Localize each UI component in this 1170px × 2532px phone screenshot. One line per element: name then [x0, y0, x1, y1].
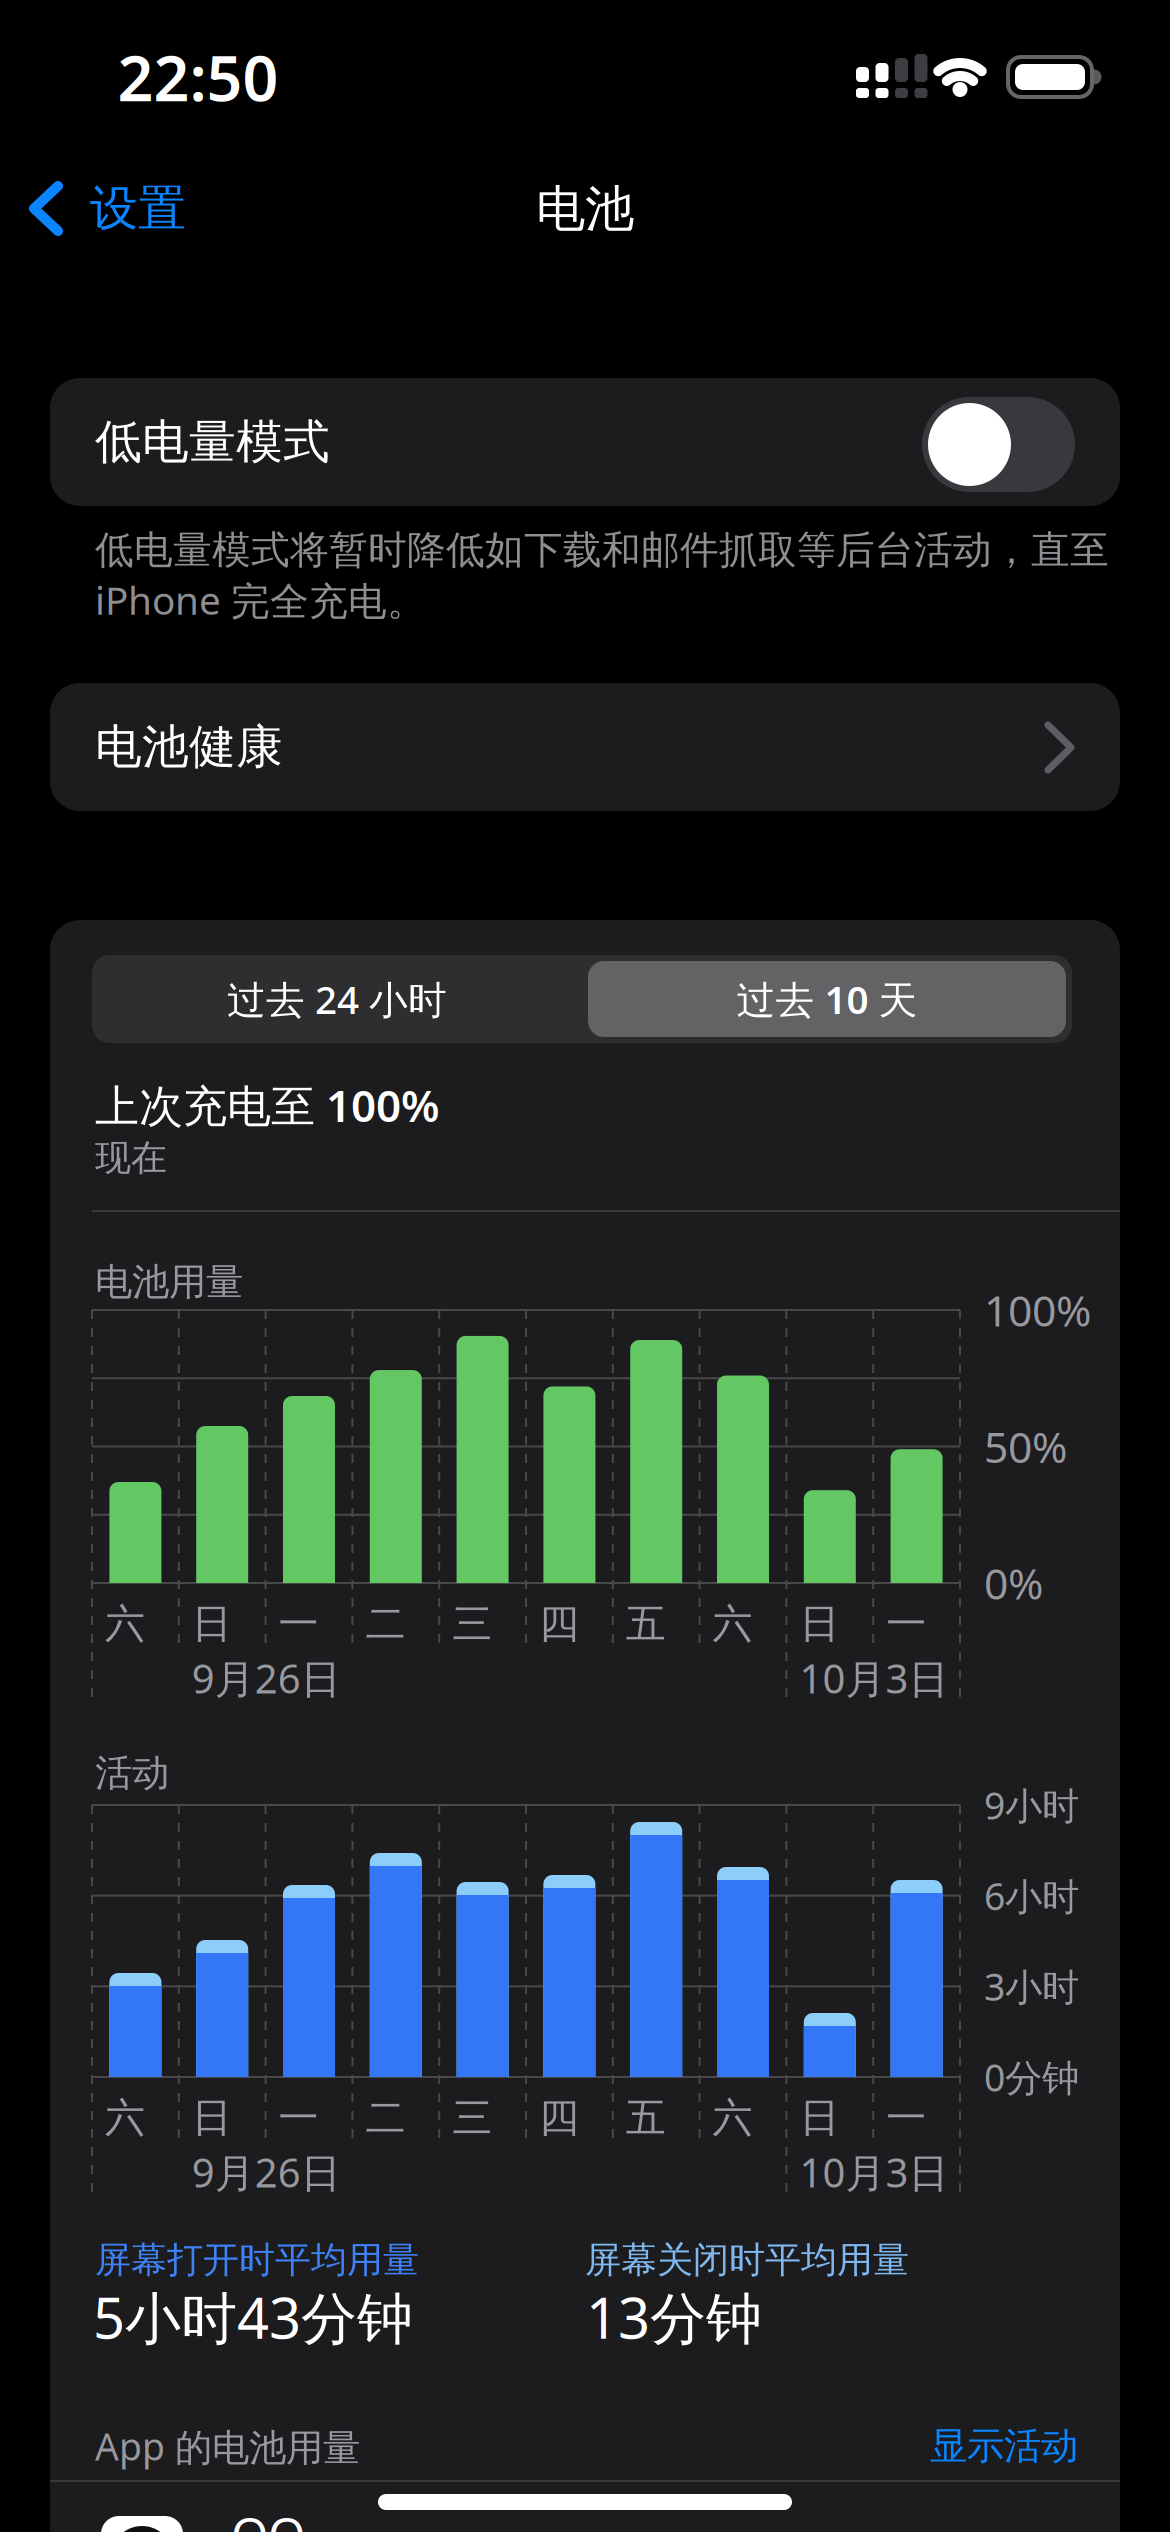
staticText: 四 [539, 1599, 579, 1648]
staticText: 一 [279, 2093, 319, 2142]
staticText: 二 [365, 1599, 405, 1648]
button[interactable]: 低电量模式 [922, 397, 1075, 492]
staticText: 0分钟 [984, 2052, 1079, 2102]
staticText: 过去 10 天 [736, 973, 917, 1025]
staticText: 13分钟 [586, 2280, 762, 2354]
staticText: 六 [713, 2093, 753, 2142]
staticText: 100% [984, 1282, 1091, 1338]
staticText: 电池健康 [95, 718, 283, 776]
staticText: 10月3日 [799, 2145, 948, 2198]
button[interactable]: 返回设置 [29, 178, 270, 239]
staticText: 10月3日 [799, 1651, 948, 1704]
button[interactable]: 电池健康 [50, 683, 1120, 811]
staticText: 屏幕打开时平均用量 [95, 2238, 419, 2282]
staticText: 现在 [95, 1136, 167, 1180]
staticText: QQ [231, 2502, 305, 2532]
staticText: 上次充电至 100% [95, 1076, 440, 1134]
staticText: 设置 [90, 179, 186, 238]
staticText: 日 [192, 2093, 232, 2142]
staticText: 低电量模式 [95, 413, 330, 471]
staticText: 五 [626, 2093, 666, 2142]
staticText: 日 [799, 1599, 839, 1648]
button[interactable]: 过去 10 天 [588, 961, 1066, 1037]
staticText: 六 [713, 1599, 753, 1648]
staticText: 0% [984, 1555, 1043, 1611]
staticText: 50% [984, 1418, 1067, 1475]
staticText: 电池 [536, 179, 634, 239]
staticText: 9月26日 [192, 2145, 341, 2198]
staticText: 日 [799, 2093, 839, 2142]
staticText: 屏幕关闭时平均用量 [585, 2238, 909, 2282]
staticText: 低电量模式将暂时降低如下载和邮件抓取等后台活动，直至 iPhone 完全充电。 [95, 526, 1109, 625]
staticText: 六 [105, 2093, 145, 2142]
staticText: App 的电池用量 [95, 2421, 360, 2471]
staticText: 过去 24 小时 [227, 973, 447, 1025]
staticText: 三 [452, 1599, 492, 1648]
staticText: 显示活动 [930, 2423, 1078, 2469]
staticText: 9月26日 [192, 1651, 341, 1704]
staticText: 四 [539, 2093, 579, 2142]
staticText: 一 [279, 1599, 319, 1648]
button[interactable]: 过去 24 小时 [92, 955, 582, 1043]
staticText: 日 [192, 1599, 232, 1648]
staticText: 六 [105, 1599, 145, 1648]
staticText: 二 [365, 2093, 405, 2142]
staticText: 活动 [95, 1750, 169, 1796]
staticText: 一 [886, 1599, 926, 1648]
staticText: 3小时 [984, 1961, 1079, 2011]
staticText: 一 [886, 2093, 926, 2142]
button[interactable]: QQ [101, 2516, 1121, 2532]
button[interactable]: 显示活动 [778, 2420, 1078, 2472]
staticText: 5小时43分钟 [93, 2280, 413, 2354]
staticText: 6小时 [984, 1871, 1079, 1920]
staticText: 22:50 [117, 35, 278, 119]
staticText: 电池用量 [95, 1259, 243, 1305]
staticText: 9小时 [984, 1780, 1079, 1830]
staticText: 三 [452, 2093, 492, 2142]
staticText: 五 [626, 1599, 666, 1648]
